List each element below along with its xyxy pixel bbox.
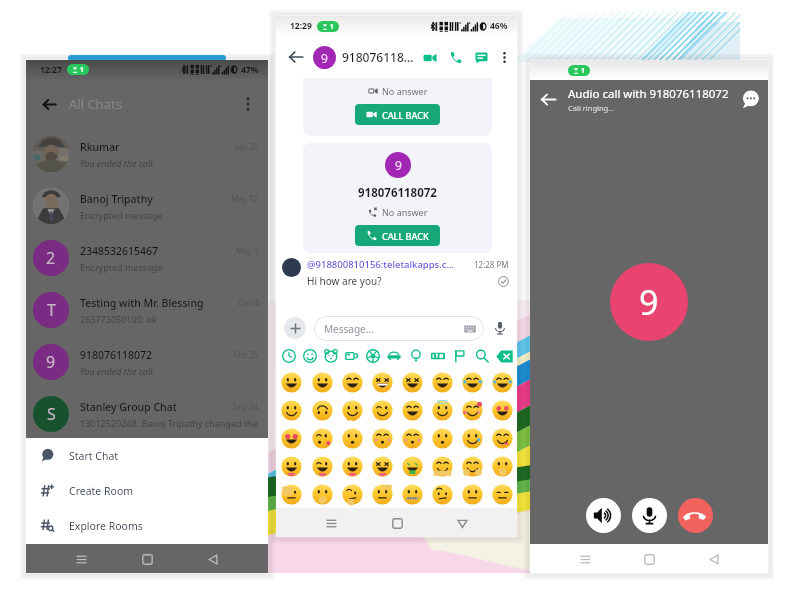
staticText: Explore Rooms xyxy=(69,519,143,533)
button[interactable]: Emoji category xyxy=(427,349,449,363)
button[interactable]: Emoji xyxy=(457,456,487,477)
button[interactable]: End call xyxy=(678,498,713,533)
button[interactable]: Home xyxy=(639,549,659,569)
button[interactable]: Back xyxy=(38,93,60,115)
button[interactable]: Emoji category xyxy=(405,349,427,363)
button[interactable]: Speaker xyxy=(586,498,621,533)
staticText: CALL BACK xyxy=(382,109,429,121)
button[interactable]: Recents xyxy=(575,549,595,569)
button[interactable]: Emoji category xyxy=(341,349,362,363)
button[interactable]: Emoji category xyxy=(383,349,405,363)
button[interactable]: Explore Rooms xyxy=(26,508,268,543)
button[interactable]: Emoji category xyxy=(362,349,383,363)
button[interactable]: S xyxy=(26,388,268,440)
button[interactable]: Mute microphone xyxy=(632,498,667,533)
button[interactable]: Banoj Tripathy xyxy=(26,180,268,232)
button[interactable]: Emoji xyxy=(427,456,457,477)
button[interactable]: Emoji xyxy=(307,428,337,449)
button[interactable]: Voice message xyxy=(491,319,509,337)
button[interactable]: Message… xyxy=(314,316,484,341)
button[interactable]: Hide keyboard xyxy=(452,513,472,533)
button[interactable]: Emoji xyxy=(307,400,337,421)
staticText: Rkumar xyxy=(80,140,120,154)
button[interactable]: 9 xyxy=(26,336,268,388)
button[interactable]: Emoji xyxy=(276,400,307,421)
button[interactable]: Emoji xyxy=(276,456,307,477)
button[interactable]: Emoji xyxy=(337,428,367,449)
button[interactable]: Threads xyxy=(472,48,491,67)
button[interactable]: No answer xyxy=(303,78,492,136)
button[interactable]: Back xyxy=(537,88,559,110)
staticText: 13012520248: Banoj Tripathy changed the xyxy=(80,417,258,429)
button[interactable]: Emoji category xyxy=(320,349,341,363)
button[interactable]: T xyxy=(26,284,268,336)
button[interactable]: Emoji xyxy=(397,428,427,449)
button[interactable]: Emoji xyxy=(487,400,517,421)
button[interactable]: Emoji category xyxy=(449,349,471,363)
button[interactable]: Emoji category xyxy=(278,349,299,363)
button[interactable]: Emoji xyxy=(427,484,457,505)
button[interactable]: Emoji xyxy=(367,484,397,505)
button[interactable]: Emoji category xyxy=(471,349,493,363)
button[interactable]: Back xyxy=(202,548,224,570)
staticText: 12:29 xyxy=(290,20,312,32)
button[interactable]: Attach xyxy=(284,317,306,339)
button[interactable]: Emoji xyxy=(487,484,517,505)
button[interactable]: Emoji xyxy=(337,484,367,505)
button[interactable]: Emoji xyxy=(367,400,397,421)
button[interactable]: More options xyxy=(237,93,259,115)
button[interactable]: Back xyxy=(704,549,724,569)
button[interactable]: Emoji xyxy=(337,456,367,477)
button[interactable]: Emoji xyxy=(487,372,517,393)
button[interactable]: Emoji xyxy=(276,372,307,393)
button[interactable]: Emoji xyxy=(307,372,337,393)
button[interactable]: Emoji xyxy=(427,372,457,393)
button[interactable]: Emoji xyxy=(397,456,427,477)
button[interactable]: Recents xyxy=(70,548,92,570)
button[interactable]: Emoji xyxy=(457,428,487,449)
button[interactable]: Emoji xyxy=(367,372,397,393)
button[interactable]: Rkumar xyxy=(26,128,268,180)
button[interactable]: Emoji xyxy=(337,372,367,393)
staticText: 9 xyxy=(321,50,328,66)
button[interactable]: Emoji xyxy=(337,400,367,421)
button[interactable]: Emoji xyxy=(307,484,337,505)
button[interactable]: Emoji xyxy=(397,400,427,421)
button[interactable]: Voice call xyxy=(446,48,465,67)
button[interactable]: 9 xyxy=(303,143,492,253)
button[interactable]: Recents xyxy=(321,513,341,533)
button[interactable]: Home xyxy=(136,548,158,570)
button[interactable]: CALL BACK xyxy=(355,225,440,246)
button[interactable]: Emoji category xyxy=(299,349,320,363)
staticText: Create Room xyxy=(69,484,134,498)
staticText: Message… xyxy=(324,322,374,336)
button[interactable]: Emoji xyxy=(367,456,397,477)
staticText: 47% xyxy=(241,64,259,76)
button[interactable]: CALL BACK xyxy=(355,104,440,125)
button[interactable]: More options xyxy=(496,49,512,65)
button[interactable]: Emoji xyxy=(427,400,457,421)
button[interactable]: Emoji xyxy=(307,456,337,477)
button[interactable]: Emoji xyxy=(457,372,487,393)
button[interactable]: Emoji xyxy=(397,484,427,505)
button[interactable]: Emoji xyxy=(276,428,307,449)
button[interactable]: Back xyxy=(286,47,306,67)
button[interactable]: Emoji xyxy=(427,428,457,449)
button[interactable]: Emoji xyxy=(457,400,487,421)
button[interactable]: Emoji xyxy=(457,484,487,505)
button[interactable]: Chat xyxy=(739,88,761,110)
staticText: May 12 xyxy=(231,193,259,204)
button[interactable]: Create Room xyxy=(26,473,268,508)
button[interactable]: Home xyxy=(387,513,407,533)
button[interactable]: Emoji xyxy=(397,372,427,393)
button[interactable]: Video call xyxy=(420,48,439,67)
button[interactable]: Backspace xyxy=(493,350,515,363)
staticText: @918800810156:teletalkapps.c… xyxy=(307,258,455,271)
button[interactable]: Emoji xyxy=(487,456,517,477)
button[interactable]: Emoji xyxy=(487,428,517,449)
button[interactable]: Emoji xyxy=(367,428,397,449)
button[interactable]: Start Chat xyxy=(26,438,268,473)
button[interactable]: Emoji xyxy=(276,484,307,505)
button[interactable]: 2 xyxy=(26,232,268,284)
button[interactable]: @918800810156:teletalkapps.c… xyxy=(282,258,509,288)
